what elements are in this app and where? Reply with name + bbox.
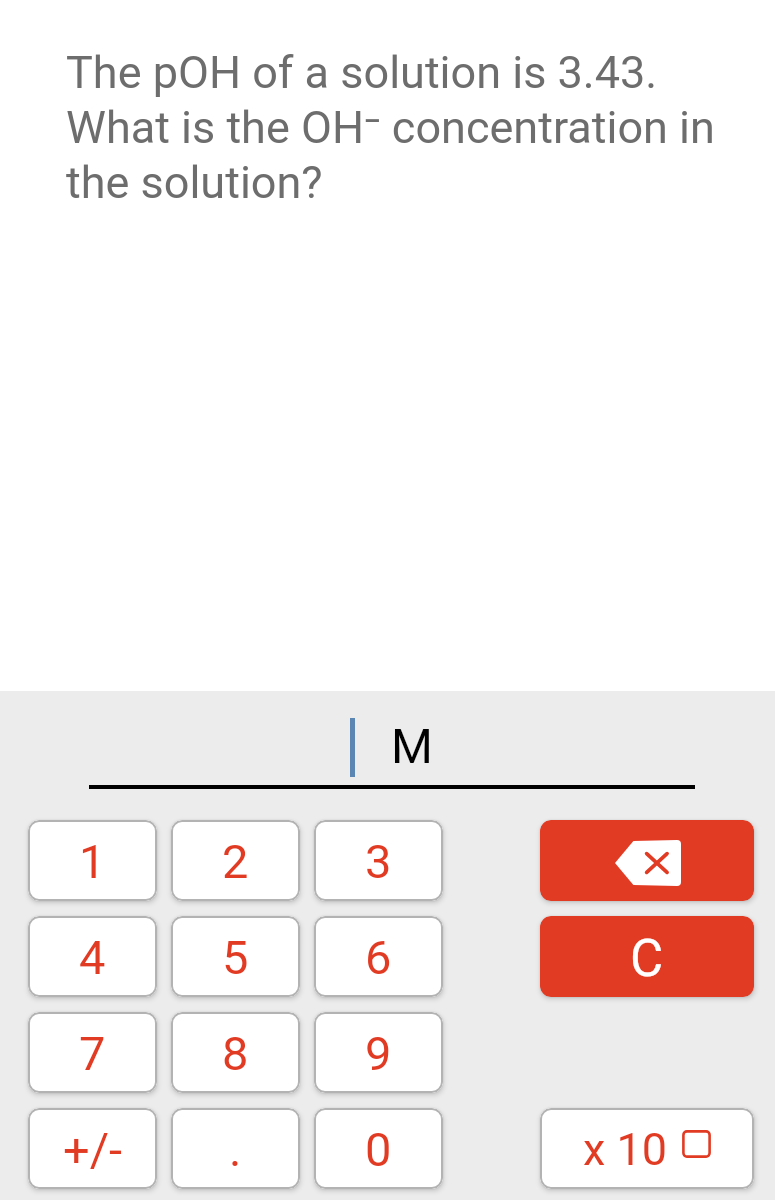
staticText: 7 xyxy=(79,1026,106,1081)
staticText: C xyxy=(630,929,664,989)
button[interactable]: 0 xyxy=(314,1108,443,1189)
button[interactable]: +/- xyxy=(28,1108,157,1189)
button[interactable]: C xyxy=(540,916,754,997)
staticText: 1 xyxy=(79,834,106,889)
staticText: +/- xyxy=(63,1122,123,1177)
button[interactable]: 9 xyxy=(314,1012,443,1093)
button[interactable]: 4 xyxy=(28,916,157,997)
button[interactable]: Times ten to the power of xyxy=(540,1108,754,1189)
button[interactable]: 8 xyxy=(171,1012,300,1093)
staticText: 4 xyxy=(79,930,106,985)
staticText: 3 xyxy=(365,834,392,889)
staticText: x 10 xyxy=(583,1123,668,1176)
staticText: . xyxy=(229,1122,242,1177)
staticText: 2 xyxy=(222,834,249,889)
staticText: 9 xyxy=(365,1026,392,1081)
staticText: The pOH of a solution is 3.43. What is t… xyxy=(66,46,721,209)
button[interactable]: 7 xyxy=(28,1012,157,1093)
staticText: 0 xyxy=(365,1122,392,1177)
button[interactable]: 3 xyxy=(314,820,443,901)
staticText: 5 xyxy=(222,930,249,985)
button[interactable]: 6 xyxy=(314,916,443,997)
staticText: 8 xyxy=(222,1026,249,1081)
staticText: M xyxy=(391,718,433,774)
button[interactable]: . xyxy=(171,1108,300,1189)
button[interactable]: 5 xyxy=(171,916,300,997)
button[interactable]: 1 xyxy=(28,820,157,901)
staticText: 6 xyxy=(365,930,392,985)
button[interactable]: Backspace xyxy=(540,820,754,901)
button[interactable]: 2 xyxy=(171,820,300,901)
